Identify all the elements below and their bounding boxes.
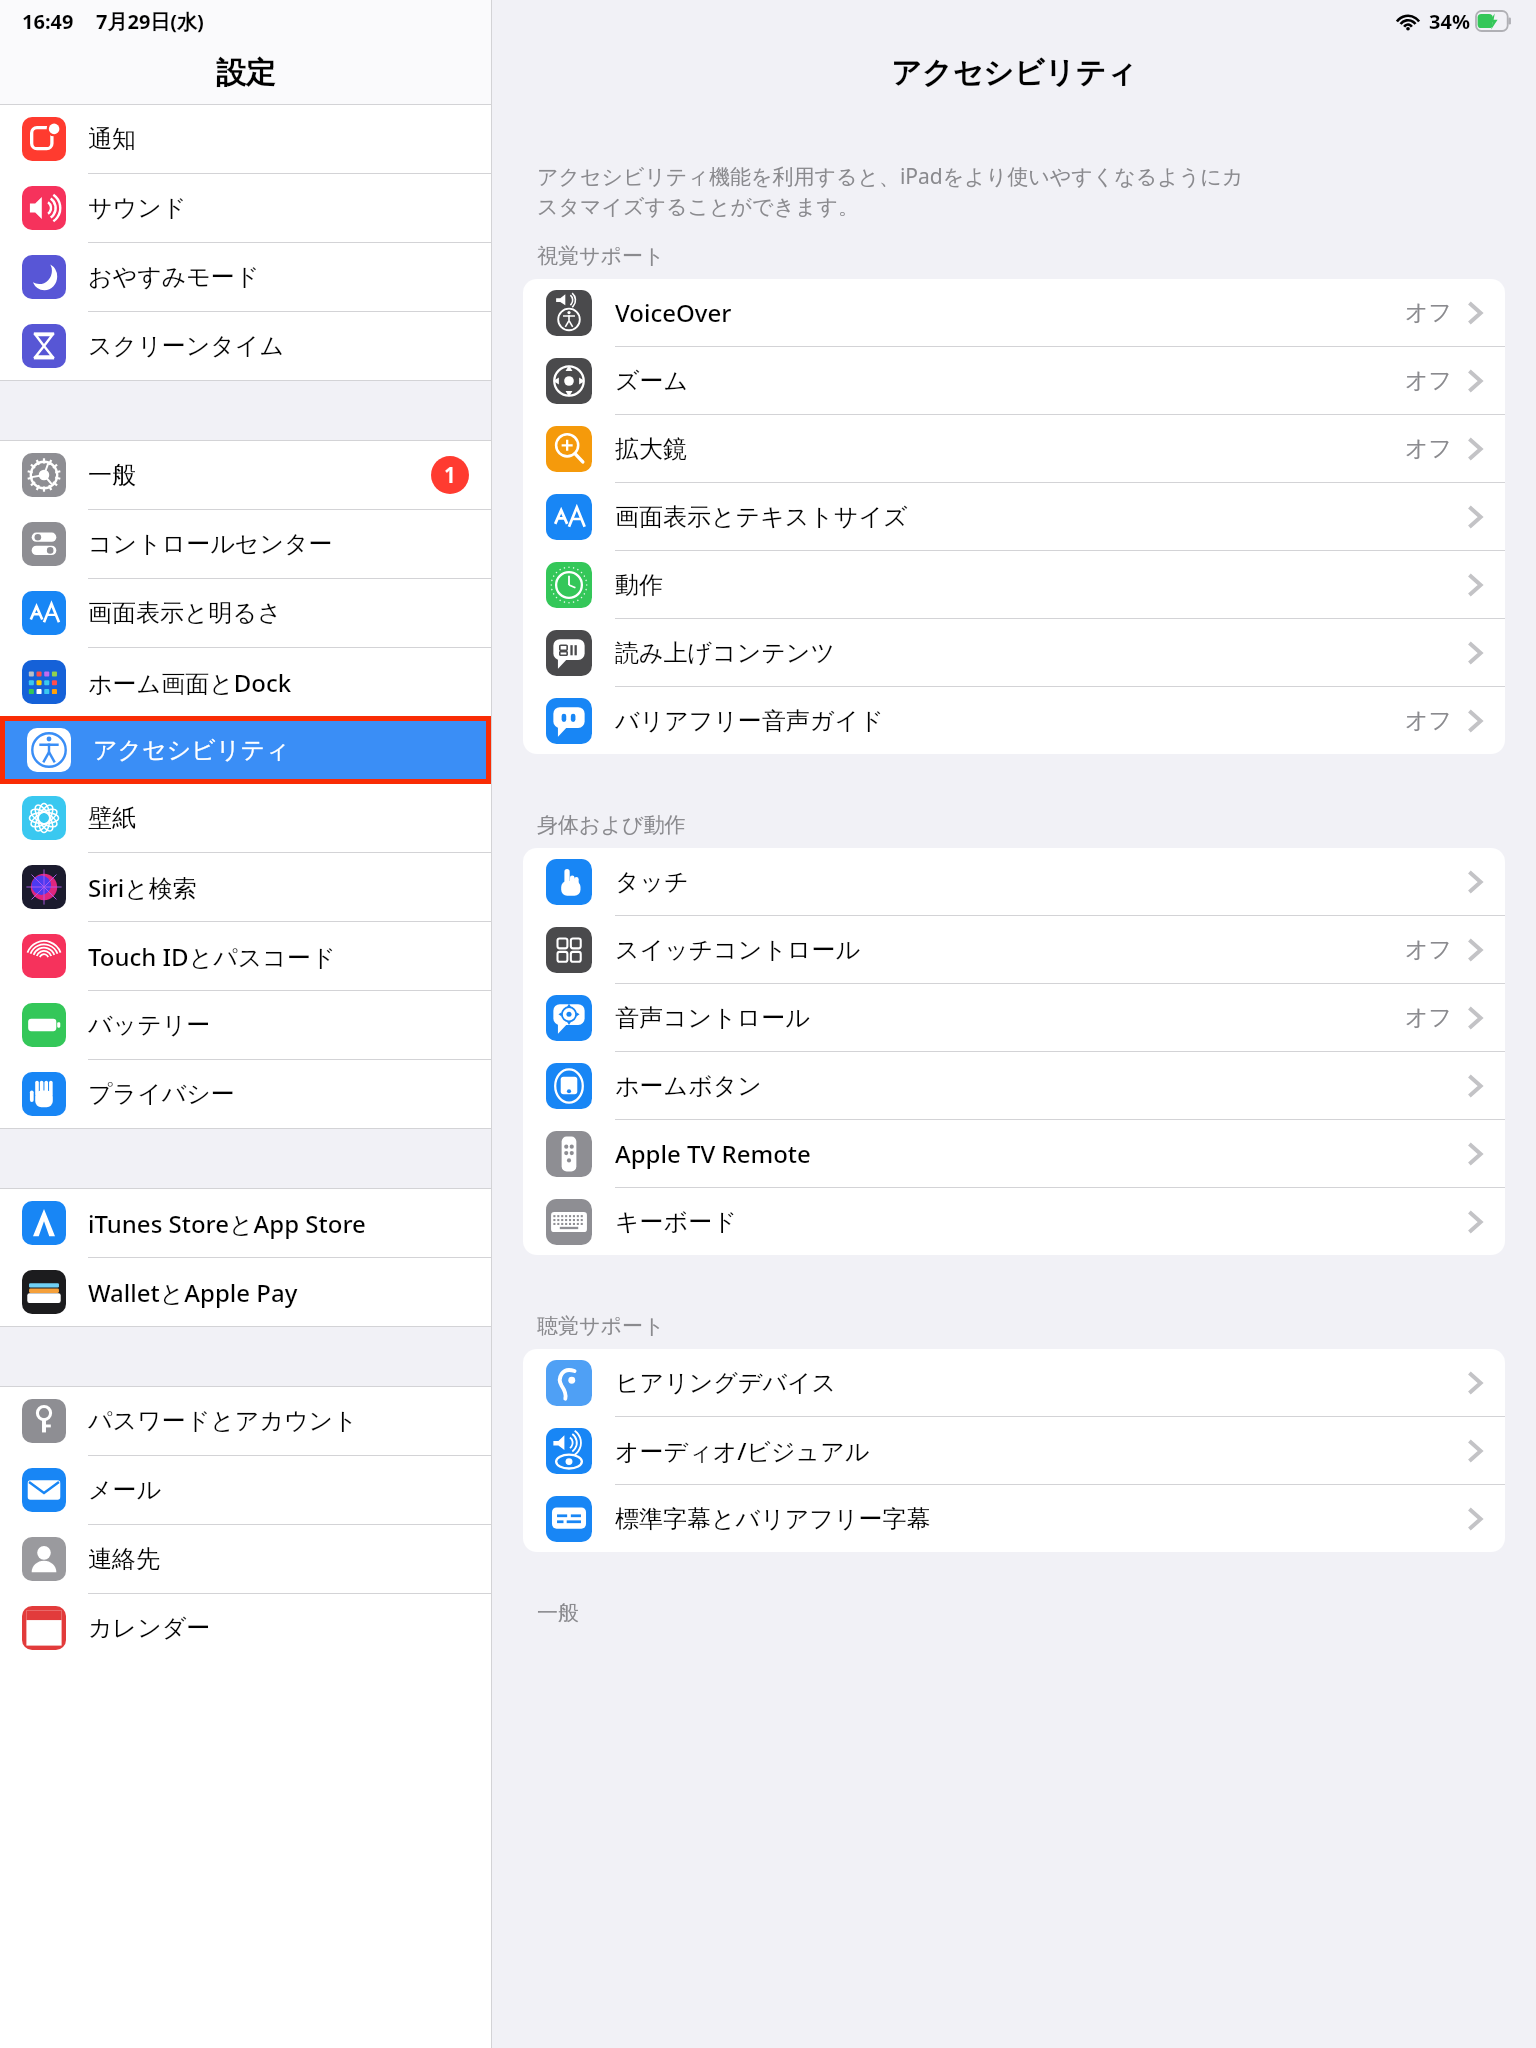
- button[interactable]: カレンダー: [0, 1594, 491, 1662]
- staticText: 読み上げコンテンツ: [615, 638, 835, 668]
- staticText: スイッチコントロール: [615, 935, 861, 965]
- staticText: オフ: [1405, 1003, 1453, 1032]
- button[interactable]: アクセシビリティ: [5, 721, 486, 779]
- button[interactable]: 壁紙: [0, 784, 491, 852]
- staticText: 標準字幕とバリアフリー字幕: [615, 1504, 931, 1534]
- staticText: プライバシー: [88, 1079, 235, 1109]
- staticText: バッテリー: [88, 1010, 211, 1040]
- button[interactable]: 連絡先: [0, 1525, 491, 1593]
- button[interactable]: 画面表示と明るさ: [0, 579, 491, 647]
- button[interactable]: オーディオ/ビジュアル: [523, 1417, 1505, 1484]
- staticText: 動作: [615, 570, 663, 600]
- staticText: 通知: [88, 124, 136, 154]
- staticText: 画面表示とテキストサイズ: [615, 502, 908, 532]
- button[interactable]: 一般: [0, 441, 491, 509]
- staticText: 16:49: [22, 8, 74, 35]
- staticText: ズーム: [615, 366, 689, 396]
- staticText: バリアフリー音声ガイド: [615, 706, 884, 736]
- button[interactable]: 拡大鏡: [523, 415, 1505, 482]
- button[interactable]: バッテリー: [0, 991, 491, 1059]
- staticText: アクセシビリティ機能を利用すると、iPadをより使いやすくなるようにカ スタマイ…: [537, 162, 1244, 221]
- staticText: ホーム画面とDock: [88, 666, 292, 699]
- staticText: 連絡先: [88, 1544, 160, 1574]
- staticText: タッチ: [615, 867, 689, 897]
- staticText: 視覚サポート: [537, 243, 665, 269]
- staticText: オフ: [1405, 434, 1453, 463]
- staticText: 画面表示と明るさ: [88, 598, 282, 628]
- staticText: Touch IDとパスコード: [88, 940, 336, 973]
- button[interactable]: メール: [0, 1456, 491, 1524]
- staticText: 1: [444, 461, 457, 490]
- button[interactable]: ズーム: [523, 347, 1505, 414]
- staticText: WalletとApple Pay: [88, 1276, 298, 1309]
- staticText: スクリーンタイム: [88, 331, 284, 361]
- button[interactable]: ホームボタン: [523, 1052, 1505, 1119]
- staticText: パスワードとアカウント: [88, 1406, 358, 1436]
- staticText: 34%: [1429, 8, 1470, 35]
- button[interactable]: 画面表示とテキストサイズ: [523, 483, 1505, 550]
- staticText: 壁紙: [88, 803, 136, 833]
- button[interactable]: VoiceOver: [523, 279, 1505, 346]
- staticText: オフ: [1405, 935, 1453, 964]
- staticText: 身体および動作: [537, 812, 686, 838]
- staticText: ヒアリングデバイス: [615, 1368, 837, 1398]
- staticText: オフ: [1405, 706, 1453, 735]
- staticText: Siriと検索: [88, 871, 197, 904]
- staticText: オーディオ/ビジュアル: [615, 1434, 870, 1467]
- staticText: 7月29日(水): [96, 8, 204, 35]
- button[interactable]: iTunes StoreとApp Store: [0, 1189, 491, 1257]
- staticText: 音声コントロール: [615, 1003, 810, 1033]
- staticText: オフ: [1405, 298, 1453, 327]
- button[interactable]: おやすみモード: [0, 243, 491, 311]
- button[interactable]: 音声コントロール: [523, 984, 1505, 1051]
- staticText: 一般: [88, 460, 136, 490]
- staticText: 一般: [537, 1600, 579, 1626]
- button[interactable]: タッチ: [523, 848, 1505, 915]
- staticText: アクセシビリティ: [891, 54, 1137, 92]
- button[interactable]: WalletとApple Pay: [0, 1258, 491, 1326]
- staticText: カレンダー: [88, 1613, 211, 1643]
- button[interactable]: ホーム画面とDock: [0, 648, 491, 716]
- staticText: 聴覚サポート: [537, 1313, 665, 1339]
- staticText: キーボード: [615, 1207, 737, 1237]
- button[interactable]: Apple TV Remote: [523, 1120, 1505, 1187]
- staticText: アクセシビリティ: [93, 735, 290, 765]
- staticText: iTunes StoreとApp Store: [88, 1207, 366, 1240]
- staticText: 拡大鏡: [615, 434, 687, 464]
- staticText: メール: [88, 1475, 162, 1505]
- button[interactable]: 動作: [523, 551, 1505, 618]
- staticText: コントロールセンター: [88, 529, 333, 559]
- button[interactable]: Siriと検索: [0, 853, 491, 921]
- button[interactable]: キーボード: [523, 1188, 1505, 1255]
- button[interactable]: 標準字幕とバリアフリー字幕: [523, 1485, 1505, 1552]
- button[interactable]: 通知: [0, 105, 491, 173]
- staticText: ホームボタン: [615, 1071, 762, 1101]
- button[interactable]: サウンド: [0, 174, 491, 242]
- button[interactable]: 読み上げコンテンツ: [523, 619, 1505, 686]
- staticText: オフ: [1405, 366, 1453, 395]
- button[interactable]: スクリーンタイム: [0, 312, 491, 380]
- staticText: サウンド: [88, 193, 187, 223]
- button[interactable]: スイッチコントロール: [523, 916, 1505, 983]
- button[interactable]: Touch IDとパスコード: [0, 922, 491, 990]
- button[interactable]: パスワードとアカウント: [0, 1387, 491, 1455]
- staticText: VoiceOver: [615, 296, 732, 329]
- button[interactable]: コントロールセンター: [0, 510, 491, 578]
- button[interactable]: ヒアリングデバイス: [523, 1349, 1505, 1416]
- button[interactable]: プライバシー: [0, 1060, 491, 1128]
- staticText: おやすみモード: [88, 262, 260, 292]
- staticText: 設定: [216, 54, 276, 92]
- staticText: Apple TV Remote: [615, 1137, 811, 1170]
- button[interactable]: バリアフリー音声ガイド: [523, 687, 1505, 754]
